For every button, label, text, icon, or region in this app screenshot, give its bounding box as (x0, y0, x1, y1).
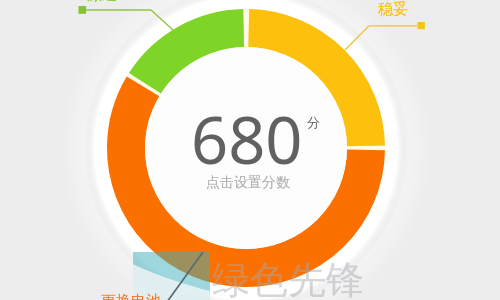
staticText: 稳妥 (378, 0, 408, 19)
button[interactable]: 激进 (87, 0, 117, 4)
button[interactable]: 稳妥 (378, 0, 408, 19)
staticText: 分 (307, 114, 320, 130)
staticText: 绿色先锋 (212, 256, 364, 300)
button[interactable]: 点击设置分数 (206, 174, 290, 192)
staticText: 激进 (87, 0, 117, 4)
staticText: 更换电池 (101, 292, 161, 300)
button[interactable]: 680 (191, 95, 321, 195)
staticText: 680 (191, 95, 303, 184)
staticText: 点击设置分数 (206, 174, 290, 192)
